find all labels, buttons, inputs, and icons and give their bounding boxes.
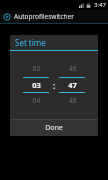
staticText: Autoprofileswitcher bbox=[14, 12, 74, 21]
staticText: 46 bbox=[68, 64, 77, 74]
button[interactable]: 04 bbox=[23, 93, 49, 109]
button[interactable]: 46 bbox=[59, 61, 85, 77]
button[interactable]: 02 bbox=[23, 61, 49, 77]
staticText: Done bbox=[45, 123, 63, 133]
staticText: 48 bbox=[68, 96, 77, 106]
button[interactable]: Done bbox=[10, 120, 98, 136]
staticText: Set time bbox=[15, 37, 46, 48]
button[interactable]: App icon bbox=[0, 10, 108, 23]
button[interactable]: 03 bbox=[23, 78, 49, 92]
staticText: 03 bbox=[32, 80, 41, 90]
staticText: 04 bbox=[32, 96, 41, 106]
button[interactable]: 48 bbox=[59, 93, 85, 109]
staticText: 3:47 bbox=[94, 1, 106, 9]
button[interactable]: 47 bbox=[59, 78, 85, 92]
staticText: 47 bbox=[68, 80, 77, 90]
staticText: 02 bbox=[32, 64, 41, 74]
staticText: : bbox=[53, 80, 56, 91]
other: App icon bbox=[3, 13, 11, 21]
